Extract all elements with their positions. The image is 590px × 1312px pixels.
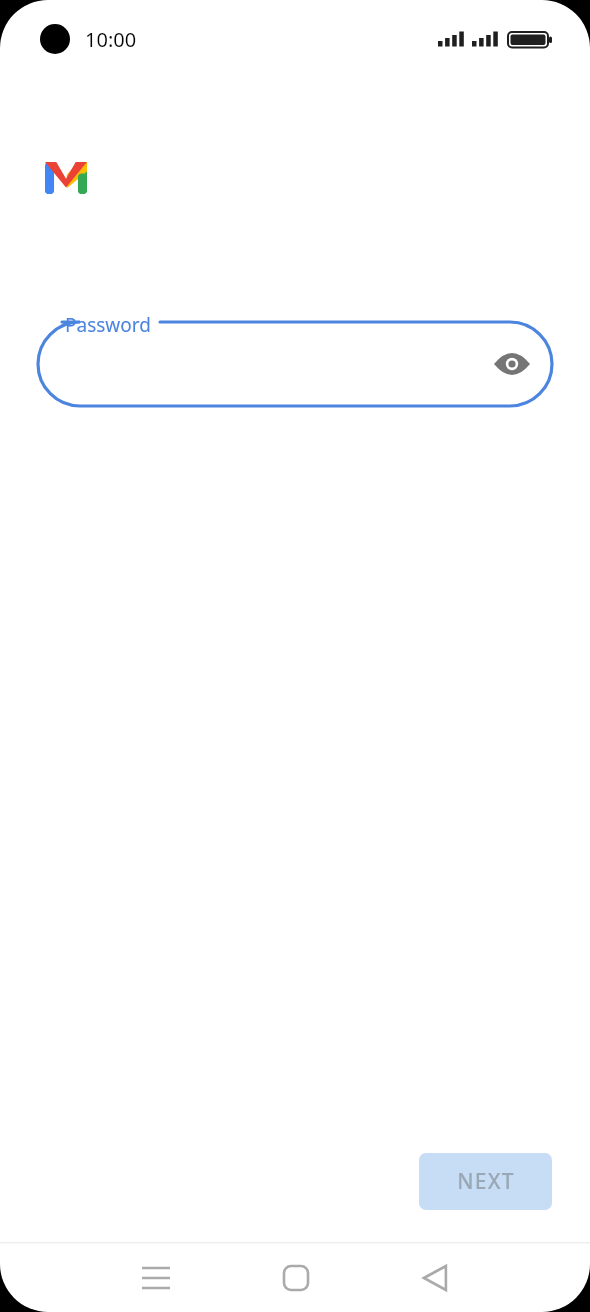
button[interactable]: Show password [490, 342, 534, 386]
button[interactable]: Recent apps [126, 1254, 186, 1302]
staticText: 10:00 [85, 26, 137, 53]
staticText: Password [65, 312, 151, 338]
button[interactable]: NEXT [419, 1153, 552, 1210]
button[interactable]: Home [266, 1254, 326, 1302]
staticText: NEXT [457, 1167, 515, 1196]
button[interactable]: Password [36, 312, 554, 416]
button[interactable]: Back [406, 1254, 466, 1302]
